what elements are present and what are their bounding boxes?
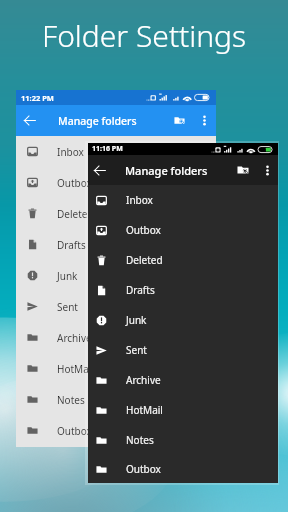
staticText: HotMail xyxy=(126,403,163,417)
staticText: HotMail xyxy=(57,362,94,376)
button[interactable]: Outbox xyxy=(88,215,278,245)
button[interactable]: Search folders xyxy=(230,155,256,185)
staticText: 11:16 PM xyxy=(92,144,123,154)
button[interactable]: Deleted xyxy=(88,245,278,275)
staticText: Archive xyxy=(126,373,161,387)
staticText: Deleted xyxy=(57,207,94,221)
staticText: Folder Settings xyxy=(42,15,247,56)
staticText: Manage folders xyxy=(58,114,137,128)
button[interactable]: HotMail xyxy=(88,395,278,425)
staticText: Drafts xyxy=(126,283,155,297)
button[interactable]: Inbox xyxy=(16,136,216,167)
staticText: Outbox xyxy=(126,462,161,476)
staticText: Manage folders xyxy=(125,163,208,178)
button[interactable]: Drafts xyxy=(88,275,278,305)
staticText: Notes xyxy=(57,393,85,407)
button[interactable]: Archive xyxy=(88,365,278,395)
staticText: Notes xyxy=(126,433,154,447)
button[interactable]: Archive xyxy=(16,322,216,353)
staticText: Outbox xyxy=(126,223,161,237)
staticText: Inbox xyxy=(126,193,153,207)
staticText: Drafts xyxy=(57,238,86,252)
staticText: Inbox xyxy=(57,145,84,159)
button[interactable]: Back xyxy=(88,155,110,185)
button[interactable]: Deleted xyxy=(16,198,216,229)
staticText: Junk xyxy=(126,313,147,327)
button[interactable]: Notes xyxy=(16,384,216,415)
button[interactable]: Outbox xyxy=(88,455,278,483)
staticText: Sent xyxy=(57,300,78,314)
staticText: Outbox xyxy=(57,424,92,438)
button[interactable]: Notes xyxy=(88,425,278,455)
button[interactable]: Sent xyxy=(16,291,216,322)
button[interactable]: Junk xyxy=(88,305,278,335)
button[interactable]: More options xyxy=(192,105,216,136)
staticText: Outbox xyxy=(57,176,92,190)
button[interactable]: Outbox xyxy=(16,167,216,198)
button[interactable]: Sent xyxy=(88,335,278,365)
button[interactable]: More options xyxy=(256,155,278,185)
button[interactable]: Back xyxy=(16,105,42,136)
button[interactable]: Outbox xyxy=(16,415,216,446)
staticText: Archive xyxy=(57,331,92,345)
button[interactable]: HotMail xyxy=(16,353,216,384)
button[interactable]: Inbox xyxy=(88,185,278,215)
staticText: Deleted xyxy=(126,253,163,267)
staticText: Sent xyxy=(126,343,147,357)
staticText: Junk xyxy=(57,269,78,283)
button[interactable]: Search folders xyxy=(166,105,192,136)
staticText: 11:22 PM xyxy=(21,93,54,103)
button[interactable]: Junk xyxy=(16,260,216,291)
button[interactable]: Drafts xyxy=(16,229,216,260)
